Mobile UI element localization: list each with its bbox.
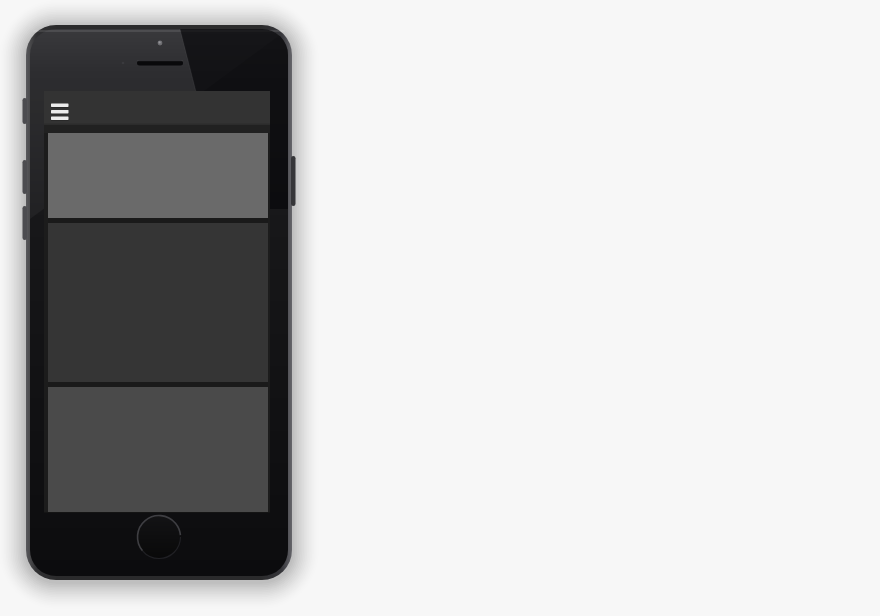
button[interactable]: Home bbox=[137, 516, 180, 559]
button[interactable]: Open navigation menu bbox=[46, 96, 78, 126]
